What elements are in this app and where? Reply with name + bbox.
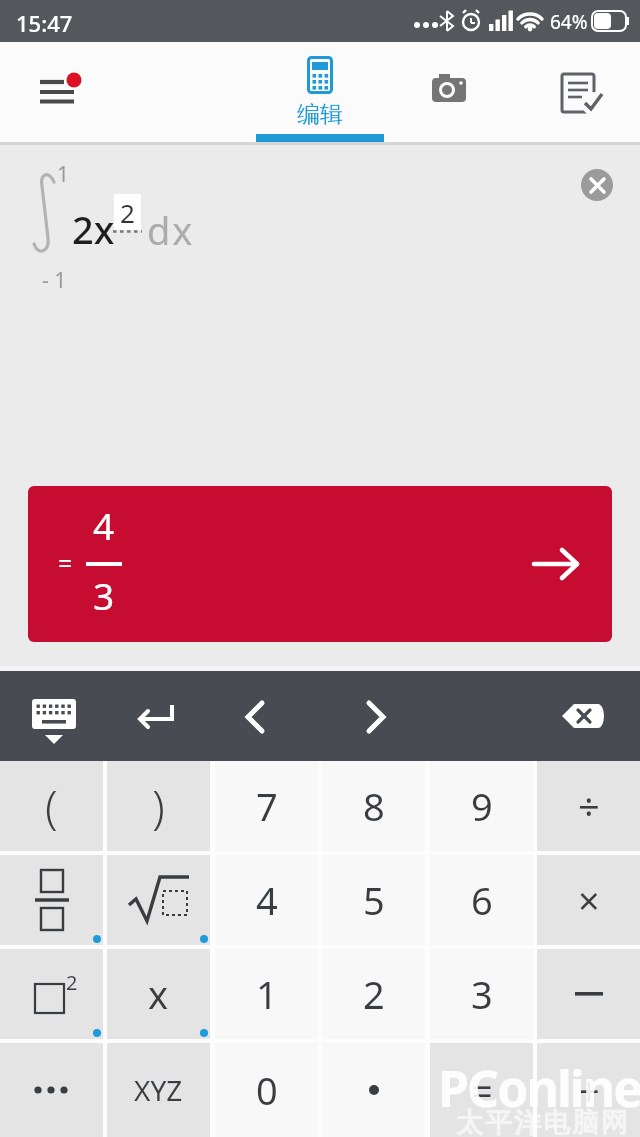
button[interactable] [554, 64, 606, 116]
staticText: ( [45, 775, 58, 838]
button[interactable] [322, 1043, 425, 1137]
staticText: XYZ [134, 1071, 183, 1109]
button[interactable]: x [107, 949, 210, 1039]
staticText: 2 [120, 195, 135, 230]
button[interactable]: ) [107, 761, 210, 851]
button[interactable]: ( [0, 761, 103, 851]
button[interactable] [235, 693, 285, 741]
button[interactable]: 6 [430, 855, 533, 945]
button[interactable]: 8 [322, 761, 425, 851]
staticText: 4 [256, 874, 278, 926]
button[interactable]: = [28, 486, 612, 642]
button[interactable]: 1 [215, 949, 318, 1039]
button[interactable]: ÷ [537, 761, 640, 851]
button[interactable]: 2 [322, 949, 425, 1039]
staticText: ) [152, 775, 165, 838]
staticText: 2 [66, 969, 78, 996]
staticText: 2x [72, 203, 115, 255]
button[interactable]: 5 [322, 855, 425, 945]
button[interactable] [581, 169, 613, 201]
button[interactable]: = [430, 1043, 533, 1137]
button[interactable]: 7 [215, 761, 318, 851]
button[interactable] [556, 699, 616, 749]
staticText: 编辑 [297, 100, 343, 129]
staticText: 8 [363, 780, 385, 832]
button[interactable] [0, 1043, 103, 1137]
staticText: = [58, 546, 73, 580]
button[interactable]: 9 [430, 761, 533, 851]
staticText: 6 [471, 874, 493, 926]
staticText: 0 [256, 1064, 278, 1116]
staticText: 2 [363, 968, 385, 1020]
button[interactable]: 0 [215, 1043, 318, 1137]
staticText: 3 [93, 570, 115, 620]
button[interactable] [24, 687, 84, 749]
staticText: 4 [93, 500, 115, 550]
button[interactable] [28, 64, 92, 120]
staticText: x [148, 968, 169, 1020]
button[interactable] [107, 855, 210, 945]
button[interactable]: 3 [430, 949, 533, 1039]
button[interactable] [537, 949, 640, 1039]
staticText: × [578, 874, 600, 926]
button[interactable]: × [537, 855, 640, 945]
staticText: 64% [550, 9, 588, 35]
staticText: - 1 [42, 266, 67, 295]
staticText: 1 [256, 968, 278, 1020]
staticText: dx [147, 204, 195, 256]
button[interactable] [130, 693, 186, 741]
staticText: 15:47 [16, 8, 73, 38]
button[interactable] [350, 693, 400, 741]
staticText: 太平洋电脑网 [455, 1106, 629, 1137]
staticText: 9 [471, 780, 493, 832]
button[interactable] [0, 855, 103, 945]
button[interactable] [425, 64, 473, 108]
button[interactable]: 4 [215, 855, 318, 945]
staticText: 1 [57, 160, 70, 189]
button[interactable]: XYZ [107, 1043, 210, 1137]
staticText: 7 [256, 780, 278, 832]
button[interactable]: 编辑 [256, 42, 384, 142]
staticText: 5 [363, 874, 385, 926]
staticText: = [471, 1064, 493, 1116]
staticText: ÷ [578, 780, 600, 832]
button[interactable]: 2 [0, 949, 103, 1039]
staticText: + [578, 1064, 600, 1116]
staticText: 3 [471, 968, 493, 1020]
button[interactable]: + [537, 1043, 640, 1137]
staticText: PConline [438, 1054, 640, 1122]
